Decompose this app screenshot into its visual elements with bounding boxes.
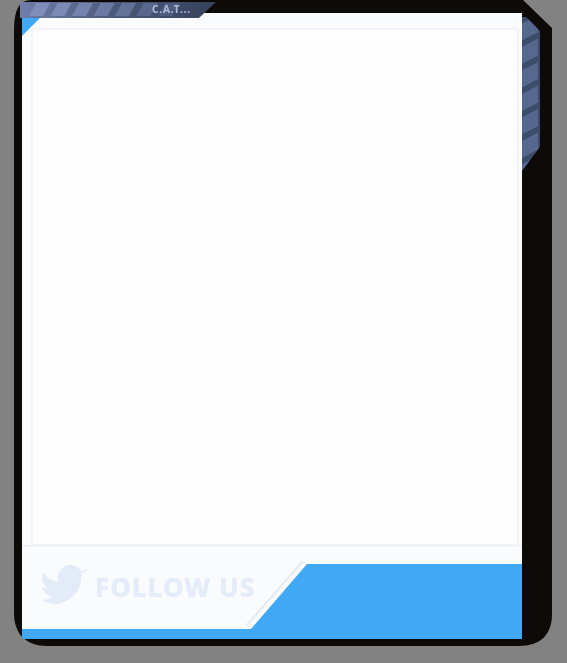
- staticText: FOLLOW US: [95, 569, 256, 604]
- button[interactable]: C.A.T...: [152, 2, 192, 16]
- button[interactable]: Follow us on Twitter: [30, 552, 270, 616]
- button[interactable]: Open Twitter feed: [300, 562, 524, 630]
